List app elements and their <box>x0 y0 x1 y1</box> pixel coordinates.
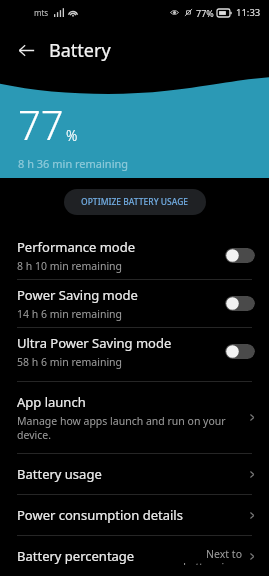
button[interactable]: Toggle <box>225 344 255 359</box>
button[interactable]: Power Saving mode <box>0 280 269 327</box>
staticText: Ultra Power Saving mode <box>17 334 172 352</box>
staticText: Battery <box>49 38 111 63</box>
staticText: OPTIMIZE BATTERY USAGE <box>81 196 189 208</box>
staticText: App launch <box>17 393 86 411</box>
staticText: Manage how apps launch and run on your d… <box>17 414 246 442</box>
button[interactable]: App launch <box>0 382 269 453</box>
staticText: 58 h 6 min remaining <box>17 355 123 369</box>
staticText: Battery percentage <box>17 547 135 565</box>
staticText: 8 h 36 min remaining <box>18 156 129 171</box>
staticText: % <box>66 126 78 145</box>
staticText: 8 h 10 min remaining <box>17 259 123 273</box>
button[interactable]: Ultra Power Saving mode <box>0 328 269 375</box>
staticText: 14 h 6 min remaining <box>17 307 123 321</box>
staticText: Power consumption details <box>17 506 183 524</box>
staticText: 77% <box>196 7 214 19</box>
button[interactable]: Performance mode <box>0 232 269 279</box>
staticText: 11:33 <box>236 6 261 19</box>
button[interactable]: Battery percentage <box>0 536 269 576</box>
staticText: Battery usage <box>17 465 102 483</box>
staticText: mts <box>34 7 49 18</box>
staticText: Power Saving mode <box>17 286 138 304</box>
button[interactable]: Back <box>8 32 44 68</box>
staticText: Performance mode <box>17 238 136 256</box>
button[interactable]: Power consumption details <box>0 495 269 535</box>
button[interactable]: OPTIMIZE BATTERY USAGE <box>64 189 206 215</box>
button[interactable]: Toggle <box>225 248 255 263</box>
button[interactable]: Toggle <box>225 296 255 311</box>
staticText: 77 <box>18 97 64 151</box>
button[interactable]: Battery usage <box>0 454 269 494</box>
staticText: Next to battery icon <box>183 547 242 565</box>
